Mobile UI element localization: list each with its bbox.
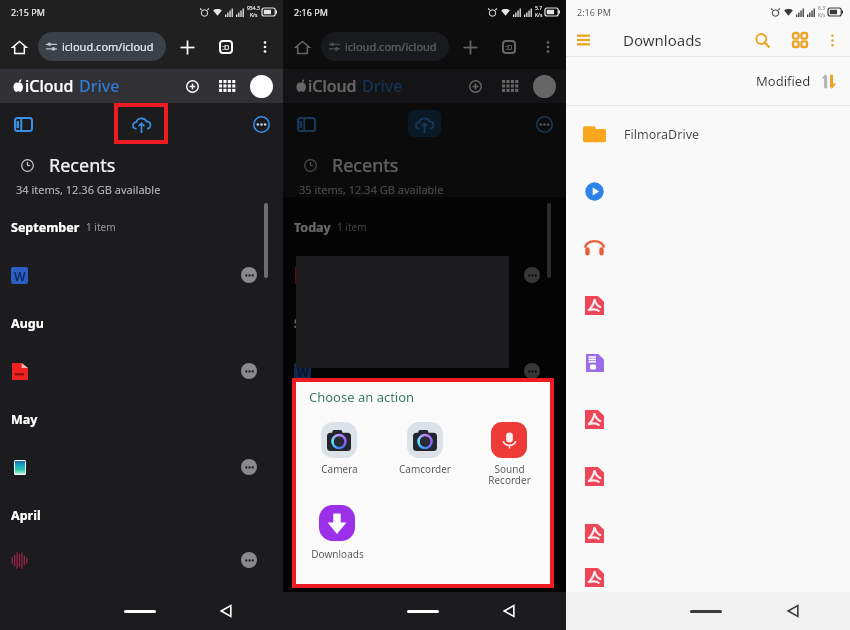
- button[interactable]: Downloads: [309, 503, 365, 561]
- staticText: Drive: [79, 75, 120, 97]
- button[interactable]: More actions: [241, 363, 257, 379]
- button[interactable]: Grid view: [787, 27, 813, 53]
- button[interactable]: [566, 448, 850, 505]
- button[interactable]: New tab: [174, 34, 200, 60]
- staticText: 35 items, 12.34 GB available: [299, 182, 444, 197]
- button[interactable]: More actions: [0, 528, 283, 592]
- button[interactable]: Home: [124, 610, 156, 613]
- staticText: Recents: [332, 153, 399, 178]
- staticText: Choose an action: [309, 388, 415, 406]
- button[interactable]: [566, 163, 850, 220]
- staticText: 6.3: [818, 5, 826, 12]
- staticText: Sound Recorder: [488, 462, 531, 487]
- staticText: iCloud: [308, 75, 357, 97]
- button[interactable]: Modified: [756, 72, 837, 90]
- button[interactable]: More: [532, 112, 556, 136]
- staticText: M: [294, 411, 306, 428]
- staticText: Recents: [49, 153, 116, 178]
- button[interactable]: More actions: [241, 267, 257, 283]
- staticText: May: [11, 411, 38, 428]
- button[interactable]: More actions: [524, 363, 540, 379]
- staticText: icloud.com/icloud: [345, 39, 437, 54]
- staticText: FilmoraDrive: [624, 126, 700, 143]
- staticText: Camera: [321, 462, 358, 476]
- button[interactable]: Apps: [215, 74, 239, 98]
- button[interactable]: Upload: [126, 109, 156, 139]
- button[interactable]: icloud.com/icloud: [38, 32, 166, 61]
- button[interactable]: More actions: [283, 240, 566, 310]
- button[interactable]: Sidebar: [11, 112, 35, 136]
- staticText: 2:16 PM: [294, 6, 328, 18]
- staticText: :D: [505, 42, 513, 52]
- button[interactable]: [566, 334, 850, 391]
- button[interactable]: [566, 505, 850, 562]
- button[interactable]: Search: [749, 27, 775, 53]
- staticText: Augu: [11, 315, 44, 332]
- button[interactable]: Home: [6, 34, 32, 60]
- staticText: Se: [294, 315, 309, 332]
- button[interactable]: Menu: [571, 28, 595, 52]
- button[interactable]: Home: [289, 34, 315, 60]
- staticText: W: [14, 268, 26, 284]
- staticText: 1 item: [337, 220, 367, 234]
- button[interactable]: W: [0, 240, 283, 310]
- button[interactable]: Camcorder: [397, 422, 453, 476]
- staticText: K/s: [818, 12, 826, 19]
- button[interactable]: Back: [782, 600, 804, 622]
- staticText: 954.3: [247, 5, 260, 12]
- button[interactable]: Apps: [498, 74, 522, 98]
- staticText: iCloud: [25, 75, 74, 97]
- staticText: 5.7: [535, 5, 543, 12]
- staticText: September: [11, 219, 80, 236]
- staticText: Camcorder: [399, 462, 451, 476]
- button[interactable]: More options: [535, 34, 561, 60]
- staticText: Downloads: [623, 30, 702, 50]
- button[interactable]: Sidebar: [294, 112, 318, 136]
- button[interactable]: icloud.com/icloud: [321, 32, 449, 61]
- staticText: K/s: [535, 12, 543, 19]
- button[interactable]: Sound Recorder: [479, 422, 539, 487]
- button[interactable]: New tab: [457, 34, 483, 60]
- button[interactable]: [566, 391, 850, 448]
- staticText: K/s: [250, 12, 258, 19]
- button[interactable]: Home: [407, 610, 439, 613]
- staticText: :D: [222, 42, 230, 52]
- staticText: April: [11, 507, 41, 524]
- button[interactable]: [566, 562, 850, 592]
- button[interactable]: Back: [498, 600, 520, 622]
- button[interactable]: More actions: [241, 459, 257, 475]
- staticText: Today: [294, 219, 331, 236]
- button[interactable]: Home: [690, 610, 722, 613]
- button[interactable]: W: [283, 336, 566, 406]
- button[interactable]: More: [249, 112, 273, 136]
- staticText: Modified: [756, 72, 811, 90]
- button[interactable]: Add: [463, 74, 487, 98]
- staticText: 2:16 PM: [577, 6, 611, 18]
- staticText: Drive: [362, 75, 403, 97]
- button[interactable]: More actions: [0, 432, 283, 502]
- button[interactable]: Upload: [409, 109, 439, 139]
- staticText: Downloads: [311, 547, 364, 561]
- button[interactable]: More options: [252, 34, 278, 60]
- staticText: 34 items, 12.36 GB available: [16, 182, 161, 197]
- staticText: icloud.com/icloud: [62, 39, 154, 54]
- button[interactable]: Account: [250, 75, 273, 98]
- button[interactable]: More actions: [0, 336, 283, 406]
- button[interactable]: Tabs: [496, 34, 522, 60]
- staticText: W: [297, 364, 309, 380]
- button[interactable]: Camera: [311, 422, 367, 476]
- button[interactable]: More actions: [524, 267, 540, 283]
- button[interactable]: FilmoraDrive: [566, 106, 850, 163]
- staticText: 1 item: [86, 220, 116, 234]
- button[interactable]: [566, 220, 850, 277]
- button[interactable]: More options: [819, 27, 845, 53]
- button[interactable]: More actions: [241, 552, 257, 568]
- button[interactable]: Tabs: [213, 34, 239, 60]
- button[interactable]: [566, 277, 850, 334]
- button[interactable]: Back: [215, 600, 237, 622]
- button[interactable]: Add: [180, 74, 204, 98]
- button[interactable]: Account: [533, 75, 556, 98]
- staticText: 2:15 PM: [11, 6, 45, 18]
